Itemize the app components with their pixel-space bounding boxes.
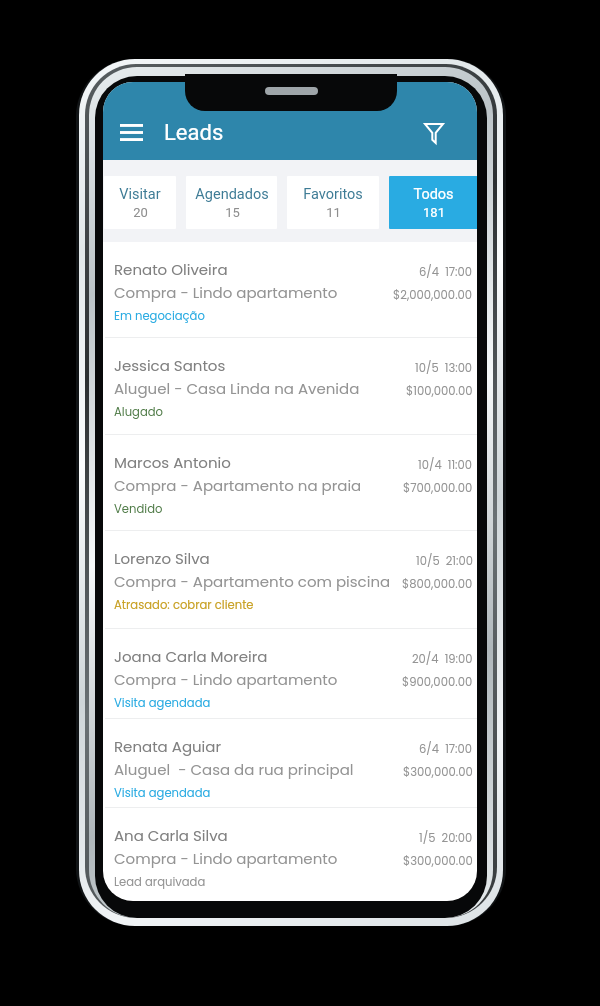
button[interactable]: Filter leads: [412, 113, 456, 153]
button[interactable]: Visitar: [104, 176, 176, 229]
staticText: 181: [423, 205, 445, 220]
staticText: Favoritos: [303, 186, 363, 203]
staticText: 1/5 20:00: [419, 830, 473, 846]
staticText: $300,000.00: [403, 764, 473, 780]
staticText: Todos: [413, 186, 454, 203]
button[interactable]: Todos: [389, 176, 477, 229]
button[interactable]: Jessica Santos: [103, 338, 477, 434]
button[interactable]: Marcos Antonio: [103, 435, 477, 530]
staticText: Em negociação: [114, 308, 205, 324]
staticText: Alugado: [114, 404, 164, 420]
staticText: Lead arquivada: [114, 874, 206, 890]
staticText: Compra - Apartamento com piscina: [114, 571, 402, 592]
staticText: Compra - Lindo apartamento: [114, 282, 393, 303]
staticText: Visitar: [119, 186, 161, 203]
staticText: Jessica Santos: [114, 355, 415, 376]
staticText: 6/4 17:00: [419, 264, 473, 280]
staticText: Atrasado: cobrar cliente: [114, 597, 254, 613]
button[interactable]: Open navigation menu: [109, 115, 153, 149]
staticText: $900,000.00: [402, 674, 473, 690]
button[interactable]: Lorenzo Silva: [103, 531, 477, 628]
button[interactable]: Renata Aguiar: [103, 719, 477, 807]
button[interactable]: Ana Carla Silva: [103, 808, 477, 901]
staticText: Compra - Lindo apartamento: [114, 848, 403, 869]
staticText: Visita agendada: [114, 695, 211, 711]
staticText: Compra - Lindo apartamento: [114, 669, 402, 690]
button[interactable]: Favoritos: [287, 176, 379, 229]
staticText: 10/5 21:00: [416, 553, 473, 569]
staticText: 10/5 13:00: [415, 360, 473, 376]
button[interactable]: Agendados: [186, 176, 277, 229]
staticText: $2,000,000.00: [393, 287, 473, 303]
button[interactable]: Renato Oliveira: [103, 242, 477, 337]
staticText: 10/4 11:00: [418, 457, 473, 473]
staticText: Joana Carla Moreira: [114, 646, 412, 667]
staticText: 6/4 17:00: [419, 741, 473, 757]
staticText: Renata Aguiar: [114, 736, 419, 757]
staticText: 20: [133, 205, 148, 220]
staticText: Marcos Antonio: [114, 452, 418, 473]
staticText: Compra - Apartamento na praia: [114, 475, 403, 496]
staticText: Vendido: [114, 501, 163, 517]
staticText: $300,000.00: [403, 853, 473, 869]
staticText: 20/4 19:00: [412, 651, 473, 667]
staticText: Aluguel - Casa Linda na Avenida: [114, 378, 406, 399]
staticText: Leads: [164, 120, 224, 146]
staticText: Renato Oliveira: [114, 259, 419, 280]
staticText: Lorenzo Silva: [114, 548, 416, 569]
staticText: Ana Carla Silva: [114, 825, 419, 846]
staticText: Visita agendada: [114, 785, 211, 801]
staticText: 11: [326, 205, 341, 220]
staticText: $100,000.00: [406, 383, 473, 399]
staticText: Aluguel - Casa da rua principal: [114, 759, 403, 780]
button[interactable]: Joana Carla Moreira: [103, 629, 477, 718]
staticText: 15: [225, 205, 240, 220]
staticText: $700,000.00: [403, 480, 473, 496]
staticText: $800,000.00: [402, 576, 473, 592]
staticText: Agendados: [195, 186, 269, 203]
